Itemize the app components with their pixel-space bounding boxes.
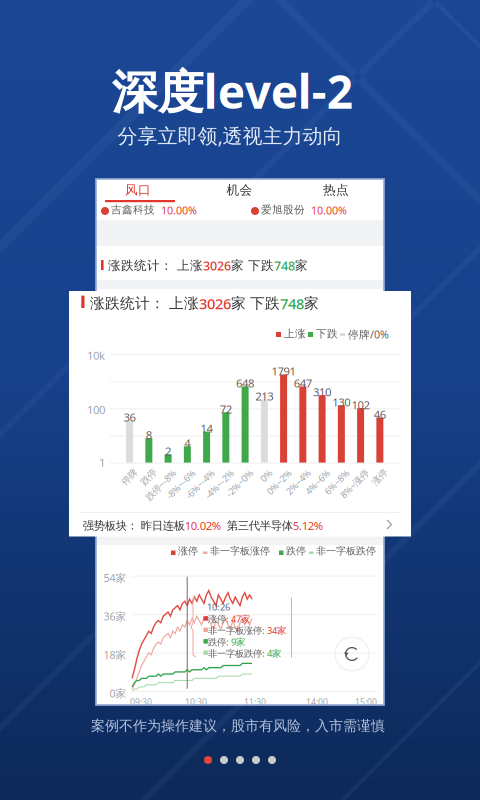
staticText: 748 bbox=[274, 257, 295, 274]
staticText: 跌停 bbox=[133, 467, 151, 478]
staticText: 1791 bbox=[272, 363, 296, 379]
staticText: 下跌 bbox=[248, 258, 274, 273]
staticText: 下跌 bbox=[316, 327, 338, 340]
staticText: 0家 bbox=[109, 686, 126, 701]
staticText: -8%~-6% bbox=[152, 467, 189, 479]
staticText: 3026 bbox=[199, 293, 231, 313]
staticText: 2 bbox=[165, 443, 171, 459]
staticText: 0% bbox=[253, 467, 266, 479]
staticText: 6%~8% bbox=[312, 467, 343, 479]
staticText: 1 bbox=[99, 455, 105, 470]
staticText: 跌停 bbox=[286, 544, 306, 557]
staticText: 热点 bbox=[323, 182, 349, 198]
button[interactable]: 机会 bbox=[192, 179, 288, 205]
staticText: 213 bbox=[255, 388, 273, 404]
staticText: 34家 bbox=[267, 624, 286, 637]
staticText: 非一字板涨停: bbox=[208, 624, 267, 637]
staticText: 4%~6% bbox=[293, 467, 324, 479]
staticText: 10.02% bbox=[185, 518, 221, 533]
staticText: 648 bbox=[236, 375, 254, 391]
staticText: 吉鑫科技 bbox=[111, 203, 155, 216]
staticText: 3026 bbox=[203, 257, 231, 274]
staticText: 昨日连板 bbox=[141, 519, 185, 533]
staticText: -6%~-4% bbox=[172, 467, 209, 479]
staticText: 09:30 bbox=[130, 696, 152, 708]
staticText: 下跌 bbox=[250, 294, 280, 313]
staticText: 家 bbox=[231, 294, 250, 313]
staticText: 跌停~-8% bbox=[131, 467, 170, 479]
staticText: 家 bbox=[304, 294, 319, 313]
button[interactable]: 强势板块： bbox=[69, 513, 411, 537]
staticText: 家 bbox=[295, 258, 308, 273]
staticText: 非一字板跌停: bbox=[208, 647, 267, 659]
staticText: 10k bbox=[87, 348, 105, 363]
staticText: 0%~2% bbox=[255, 467, 286, 479]
staticText: 14 bbox=[201, 420, 213, 436]
staticText: 爱旭股份 bbox=[261, 203, 305, 216]
button[interactable]: Refresh bbox=[333, 635, 371, 673]
staticText: 8%~涨停 bbox=[327, 467, 363, 479]
staticText: 上涨 bbox=[169, 294, 199, 313]
staticText: 5.12% bbox=[293, 518, 323, 533]
staticText: 风口 bbox=[125, 182, 151, 198]
staticText: 2%~4% bbox=[274, 467, 305, 479]
staticText: 跌停: bbox=[208, 635, 231, 648]
staticText: 4家 bbox=[267, 647, 281, 659]
staticText: 9家 bbox=[231, 635, 245, 648]
staticText: 47家 bbox=[231, 612, 250, 625]
staticText: -4%~-2% bbox=[191, 467, 228, 479]
staticText: 上涨 bbox=[284, 327, 306, 340]
staticText: 分享立即领,透视主力动向 bbox=[117, 122, 342, 149]
staticText: 非一字板跌停 bbox=[316, 544, 376, 557]
staticText: 18家 bbox=[103, 648, 126, 662]
staticText: 涨跌统计： bbox=[108, 258, 177, 273]
staticText: 强势板块： bbox=[83, 519, 141, 533]
staticText: 10:26 bbox=[207, 600, 230, 613]
staticText: 涨跌统计： bbox=[90, 294, 169, 313]
staticText: 10.00% bbox=[161, 203, 197, 217]
staticText: 8 bbox=[146, 427, 152, 442]
staticText: 深度level-2 bbox=[112, 59, 353, 122]
staticText: 非一字板涨停 bbox=[210, 544, 270, 557]
staticText: 上涨 bbox=[177, 258, 203, 273]
staticText: 涨停: bbox=[208, 612, 231, 625]
staticText: 第三代半导体 bbox=[221, 519, 293, 533]
staticText: 案例不作为操作建议，股市有风险，入市需谨慎 bbox=[91, 717, 385, 735]
staticText: 100 bbox=[87, 402, 105, 417]
staticText: 647 bbox=[294, 375, 312, 391]
staticText: 36家 bbox=[103, 609, 126, 624]
staticText: 11:30 bbox=[244, 696, 266, 708]
staticText: 130 bbox=[332, 394, 350, 410]
staticText: 748 bbox=[280, 293, 304, 313]
staticText: 停牌 bbox=[114, 467, 132, 478]
button[interactable]: 风口 bbox=[96, 179, 192, 205]
staticText: 72 bbox=[220, 401, 232, 417]
staticText: 10:30 bbox=[185, 696, 207, 708]
staticText: 涨停 bbox=[364, 467, 382, 478]
staticText: 102 bbox=[352, 397, 370, 413]
staticText: 54家 bbox=[103, 571, 126, 585]
staticText: 15:00 bbox=[355, 696, 377, 708]
staticText: 14:00 bbox=[306, 696, 328, 708]
staticText: 停牌/0% bbox=[348, 327, 389, 341]
staticText: 310 bbox=[313, 384, 331, 399]
staticText: 机会 bbox=[226, 182, 252, 198]
staticText: 46 bbox=[374, 406, 386, 422]
staticText: 10.00% bbox=[311, 203, 347, 217]
button[interactable]: 热点 bbox=[288, 179, 384, 205]
staticText: -2%~0% bbox=[213, 467, 247, 479]
staticText: 36 bbox=[124, 409, 136, 425]
staticText: 4 bbox=[184, 435, 190, 451]
staticText: 家 bbox=[231, 258, 248, 273]
staticText: 涨停 bbox=[178, 544, 198, 557]
